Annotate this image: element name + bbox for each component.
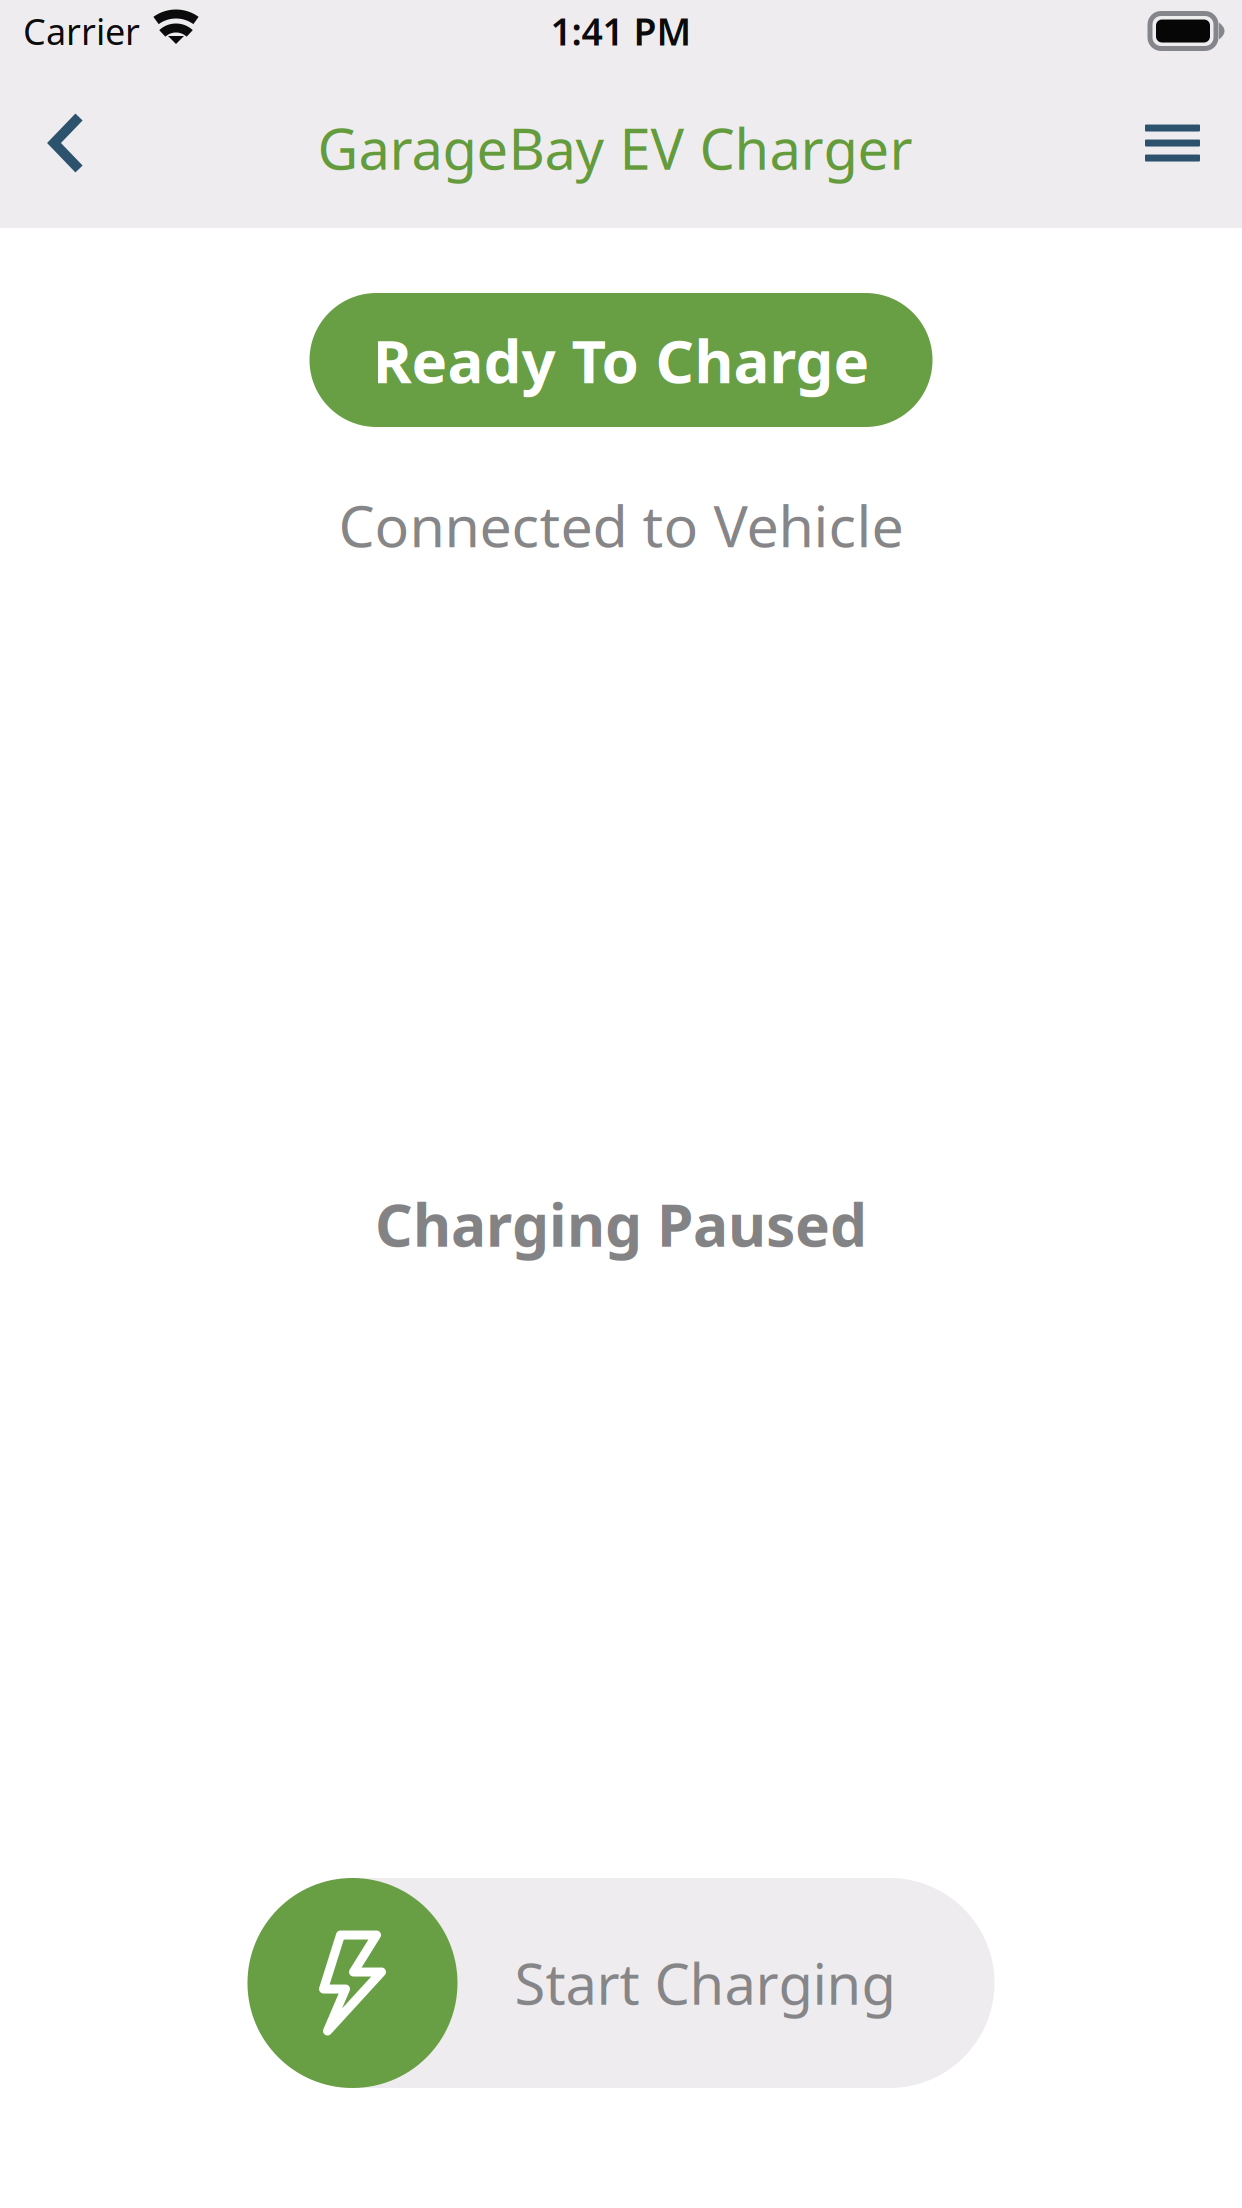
staticText: Carrier — [23, 7, 140, 55]
staticText: 1:41 PM — [550, 6, 691, 56]
staticText: Start Charging — [514, 1946, 895, 2020]
button[interactable]: Menu — [1121, 68, 1242, 228]
staticText: Ready To Charge — [372, 320, 869, 400]
staticText: GarageBay EV Charger — [317, 111, 912, 185]
button[interactable]: Ready To Charge — [309, 293, 932, 427]
button[interactable]: Back — [0, 68, 109, 228]
staticText: Charging Paused — [375, 1185, 867, 1263]
button[interactable]: Start Charging — [247, 1878, 994, 2088]
staticText: Connected to Vehicle — [338, 487, 903, 563]
